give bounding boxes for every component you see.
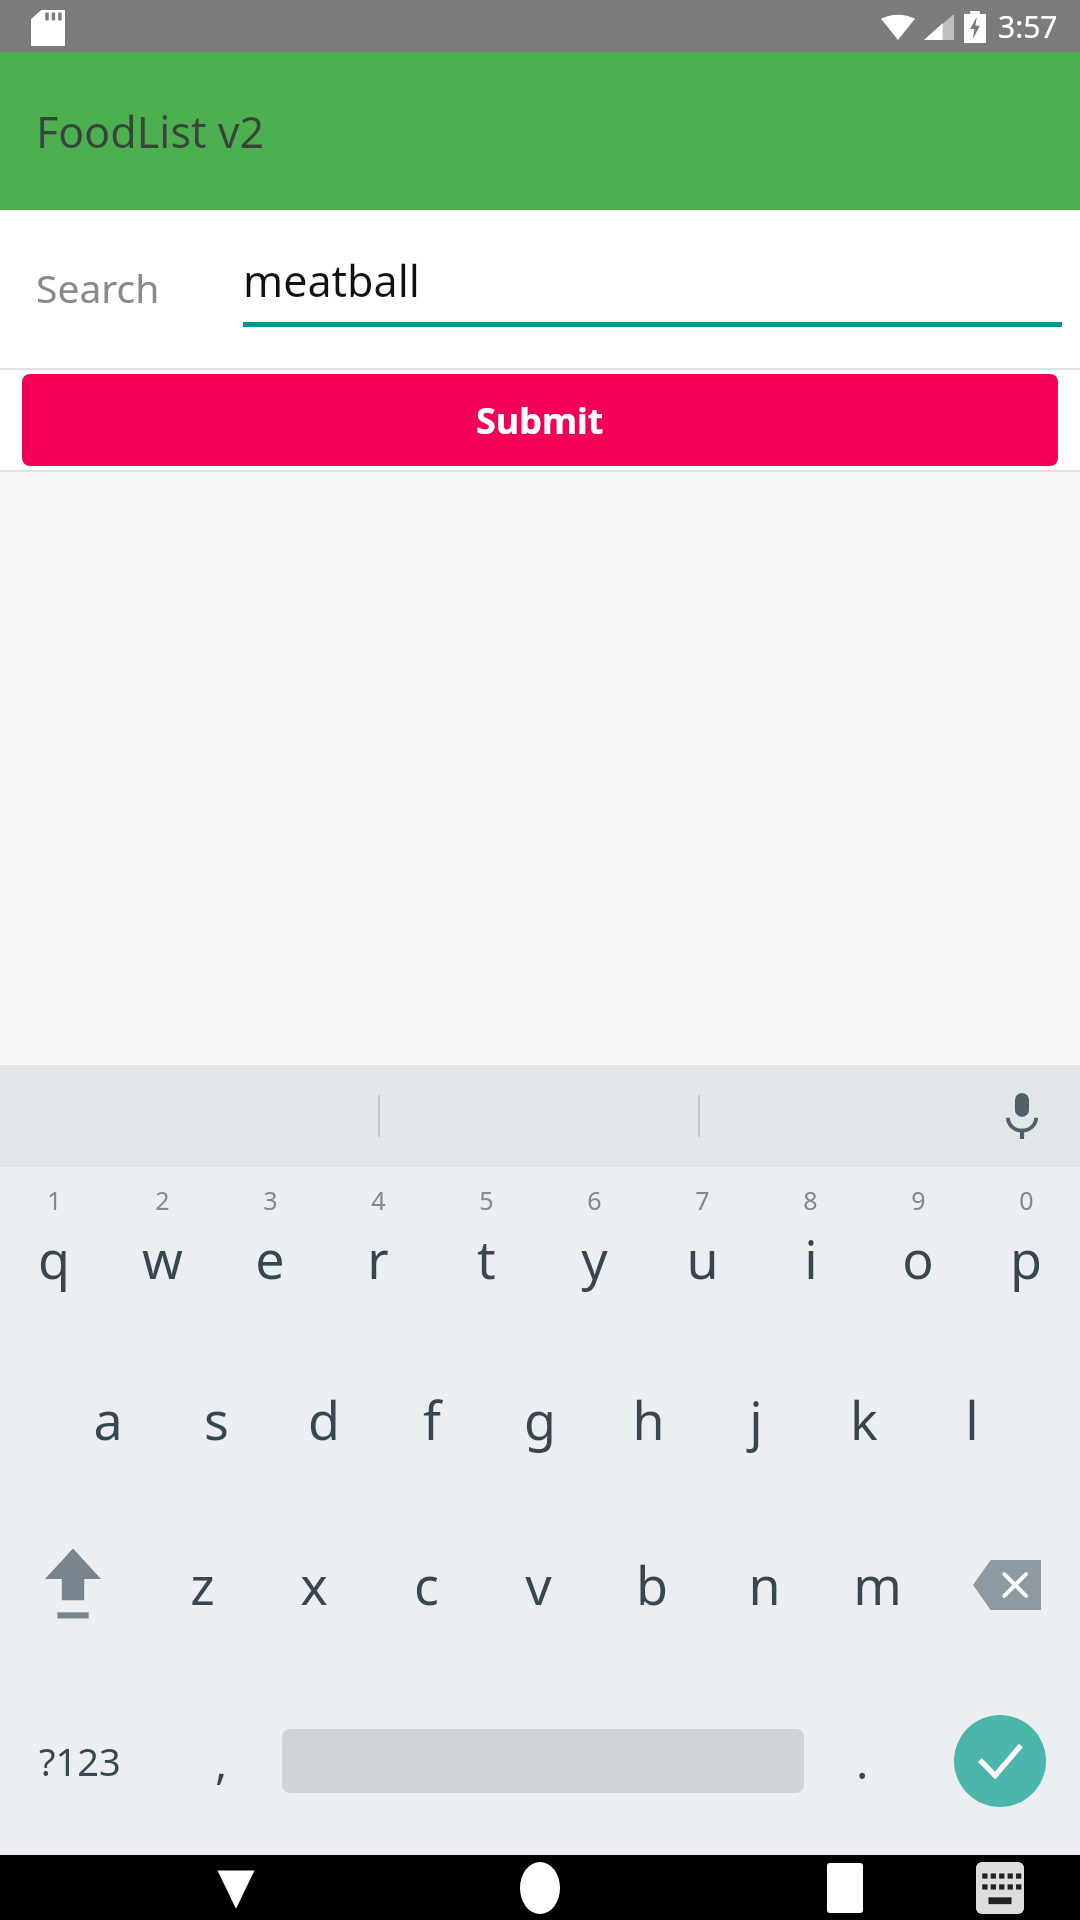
staticText: p xyxy=(1010,1223,1042,1294)
button[interactable]: m xyxy=(821,1502,934,1667)
staticText: b xyxy=(636,1549,668,1620)
button[interactable]: . xyxy=(804,1667,920,1855)
staticText: 6 xyxy=(587,1183,602,1217)
staticText: e xyxy=(255,1223,285,1294)
button[interactable]: g xyxy=(486,1337,594,1502)
staticText: i xyxy=(804,1223,818,1294)
staticText: 7 xyxy=(695,1183,710,1217)
staticText: t xyxy=(477,1223,496,1294)
staticText: , xyxy=(215,1730,228,1793)
staticText: v xyxy=(525,1549,552,1620)
staticText: ?123 xyxy=(39,1735,121,1787)
staticText: 3 xyxy=(263,1183,278,1217)
staticText: l xyxy=(965,1384,979,1455)
staticText: . xyxy=(856,1730,869,1793)
staticText: m xyxy=(853,1549,902,1620)
button[interactable]: x xyxy=(258,1502,370,1667)
staticText: o xyxy=(902,1223,934,1294)
staticText: 4 xyxy=(371,1183,386,1217)
button[interactable]: Enter xyxy=(920,1667,1080,1855)
button[interactable]: d xyxy=(270,1337,378,1502)
button[interactable]: Shift xyxy=(0,1502,146,1667)
staticText: r xyxy=(367,1223,389,1294)
button[interactable]: ?123 xyxy=(0,1667,160,1855)
button[interactable]: 9 xyxy=(864,1167,972,1337)
staticText: 9 xyxy=(911,1183,926,1217)
staticText: 5 xyxy=(479,1183,494,1217)
staticText: g xyxy=(524,1384,556,1455)
button[interactable]: v xyxy=(482,1502,595,1667)
button[interactable]: a xyxy=(54,1337,162,1502)
staticText: 8 xyxy=(803,1183,818,1217)
staticText: Search xyxy=(36,261,160,314)
staticText: c xyxy=(414,1549,439,1620)
button[interactable]: 0 xyxy=(972,1167,1080,1337)
staticText: q xyxy=(38,1223,70,1294)
button[interactable]: 4 xyxy=(324,1167,432,1337)
button[interactable]: 7 xyxy=(648,1167,756,1337)
button[interactable]: 1 xyxy=(0,1167,108,1337)
staticText: f xyxy=(423,1384,441,1455)
staticText: w xyxy=(142,1223,183,1294)
button[interactable]: 2 xyxy=(108,1167,216,1337)
button[interactable]: Switch keyboard xyxy=(960,1855,1040,1920)
staticText: a xyxy=(93,1384,123,1455)
button[interactable]: n xyxy=(708,1502,821,1667)
button[interactable]: f xyxy=(378,1337,486,1502)
button[interactable]: z xyxy=(146,1502,258,1667)
staticText: y xyxy=(581,1223,608,1294)
staticText: 2 xyxy=(155,1183,170,1217)
button[interactable]: , xyxy=(160,1667,282,1855)
staticText: 0 xyxy=(1019,1183,1034,1217)
staticText: meatball xyxy=(243,251,420,310)
button[interactable] xyxy=(282,1667,804,1855)
button[interactable]: s xyxy=(162,1337,270,1502)
button[interactable]: Voice input xyxy=(986,1080,1058,1152)
button[interactable]: c xyxy=(370,1502,482,1667)
button[interactable]: Home xyxy=(500,1855,580,1920)
staticText: k xyxy=(850,1384,878,1455)
button[interactable]: Recents xyxy=(805,1855,885,1920)
staticText: d xyxy=(308,1384,340,1455)
staticText: u xyxy=(686,1223,719,1294)
staticText: Submit xyxy=(476,396,604,445)
button[interactable]: Backspace xyxy=(934,1502,1080,1667)
staticText: n xyxy=(748,1549,781,1620)
staticText: 1 xyxy=(47,1183,62,1217)
button[interactable]: 8 xyxy=(756,1167,864,1337)
button[interactable]: k xyxy=(810,1337,918,1502)
button[interactable]: j xyxy=(702,1337,810,1502)
staticText: 3:57 xyxy=(998,6,1058,47)
button[interactable]: h xyxy=(594,1337,702,1502)
button[interactable]: b xyxy=(595,1502,708,1667)
staticText: z xyxy=(190,1549,215,1620)
staticText: x xyxy=(300,1549,328,1620)
staticText: h xyxy=(632,1384,665,1455)
button[interactable]: 6 xyxy=(540,1167,648,1337)
button[interactable]: Back xyxy=(196,1855,276,1920)
staticText: FoodList v2 xyxy=(36,102,265,161)
button[interactable]: 5 xyxy=(432,1167,540,1337)
button[interactable]: 3 xyxy=(216,1167,324,1337)
staticText: j xyxy=(749,1384,763,1455)
button[interactable]: Search xyxy=(0,210,1080,368)
button[interactable]: l xyxy=(918,1337,1026,1502)
button[interactable]: Submit xyxy=(22,374,1058,466)
staticText: s xyxy=(204,1384,229,1455)
